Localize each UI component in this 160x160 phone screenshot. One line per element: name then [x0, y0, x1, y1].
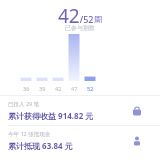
staticText: 39 — [39, 85, 46, 92]
staticText: 累计获得收益 914.82 元 — [8, 110, 94, 121]
staticText: 52 — [87, 85, 94, 92]
staticText: 今年 12 张抵现金 — [8, 130, 51, 138]
other: Earnings detail — [130, 104, 144, 118]
staticText: 47 — [71, 85, 78, 92]
button[interactable]: 今年 12 张抵现金 — [0, 126, 160, 155]
other: Coupon detail — [130, 134, 144, 148]
staticText: 已投入 29 笔 — [8, 100, 40, 108]
staticText: 36 — [23, 85, 30, 92]
button[interactable]: 已投入 29 笔 — [0, 96, 160, 125]
staticText: 42 — [55, 85, 62, 92]
staticText: 42/52周 — [58, 3, 103, 23]
staticText: 已参与期数 — [65, 24, 95, 32]
staticText: 累计抵现 63.84 元 — [8, 140, 73, 151]
